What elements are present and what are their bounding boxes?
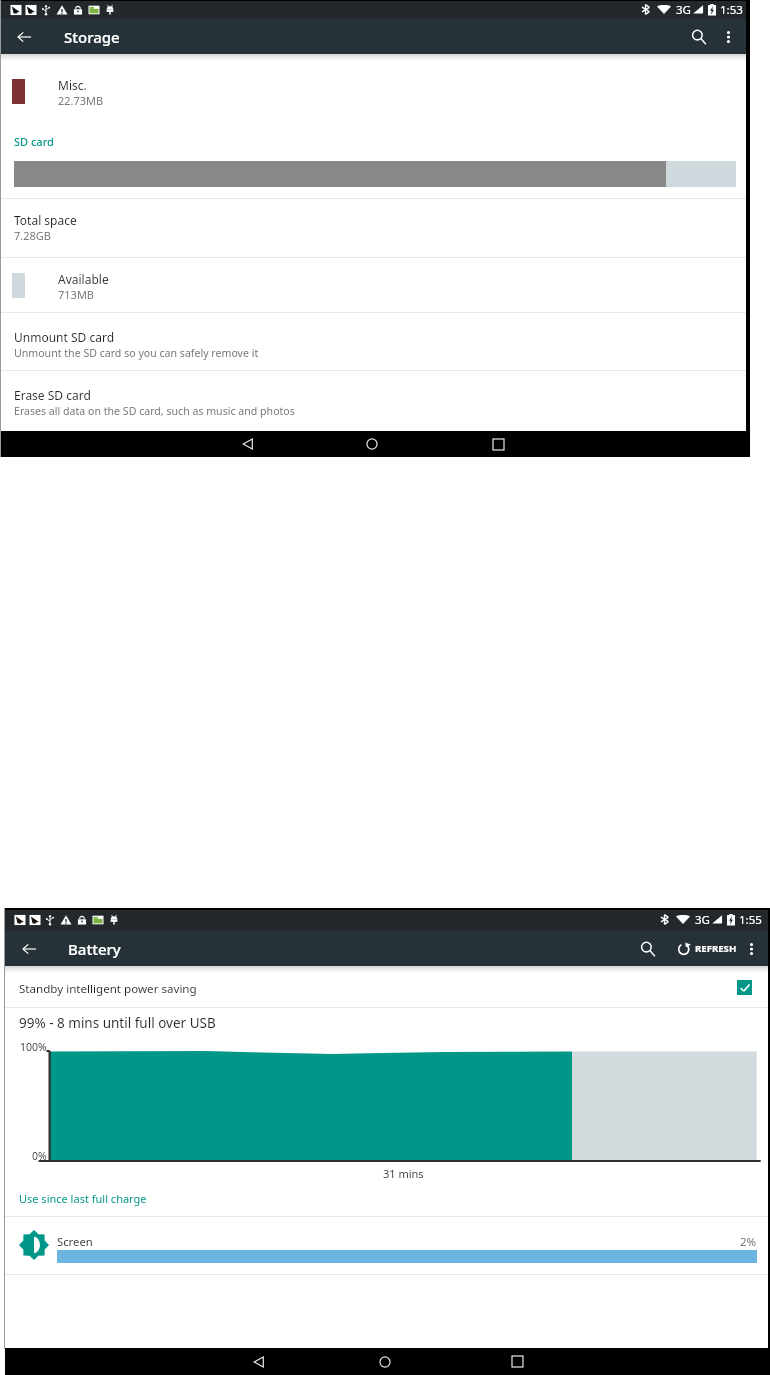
staticText: Screen — [57, 1234, 93, 1249]
button[interactable] — [1, 258, 750, 310]
staticText: Erases all data on the SD card, such as … — [14, 404, 295, 418]
button[interactable] — [1, 56, 750, 124]
staticText: SD card — [14, 134, 54, 149]
button[interactable] — [5, 968, 769, 1007]
staticText: REFRESH — [695, 942, 737, 955]
button[interactable] — [1, 199, 750, 257]
staticText: 713MB — [58, 287, 95, 302]
button[interactable]: REFRESH — [671, 931, 745, 966]
staticText: 1:55 — [739, 912, 762, 928]
staticText: Unmount the SD card so you can safely re… — [14, 346, 259, 360]
button[interactable]: Navigate up — [5, 931, 67, 966]
button[interactable]: Recent apps — [484, 431, 512, 457]
staticText: Misc. — [58, 77, 87, 93]
staticText: Use since last full charge — [19, 1191, 147, 1206]
staticText: 0% — [32, 1149, 47, 1163]
staticText: 1:53 — [720, 2, 743, 18]
button[interactable] — [5, 1217, 769, 1274]
button[interactable] — [5, 1180, 769, 1216]
staticText: 7.28GB — [14, 228, 51, 243]
staticText: Total space — [14, 212, 77, 228]
staticText: 2% — [740, 1234, 757, 1250]
button[interactable] — [1, 371, 750, 431]
staticText: Available — [58, 271, 109, 287]
button[interactable]: More options — [709, 19, 747, 54]
button[interactable]: Home — [358, 431, 386, 457]
button[interactable]: Recent apps — [503, 1348, 531, 1375]
button[interactable]: Search — [629, 931, 667, 966]
button[interactable]: Search — [679, 19, 719, 54]
button[interactable] — [1, 313, 750, 370]
button[interactable]: Back — [234, 431, 262, 457]
staticText: Standby intelligent power saving — [19, 981, 197, 997]
staticText: 22.73MB — [58, 93, 104, 108]
staticText: 100% — [20, 1040, 47, 1054]
staticText: Battery — [68, 939, 121, 959]
button[interactable]: Navigate up — [1, 19, 63, 54]
staticText: 99% - 8 mins until full over USB — [19, 1014, 216, 1032]
button[interactable]: More options — [733, 931, 769, 966]
button[interactable]: Back — [245, 1348, 273, 1375]
button[interactable]: Home — [371, 1348, 399, 1375]
staticText: Erase SD card — [14, 387, 91, 403]
staticText: 31 mins — [383, 1166, 424, 1181]
staticText: Storage — [64, 27, 120, 47]
staticText: 3G — [676, 2, 691, 18]
staticText: Unmount SD card — [14, 329, 115, 345]
staticText: 3G — [695, 912, 710, 928]
